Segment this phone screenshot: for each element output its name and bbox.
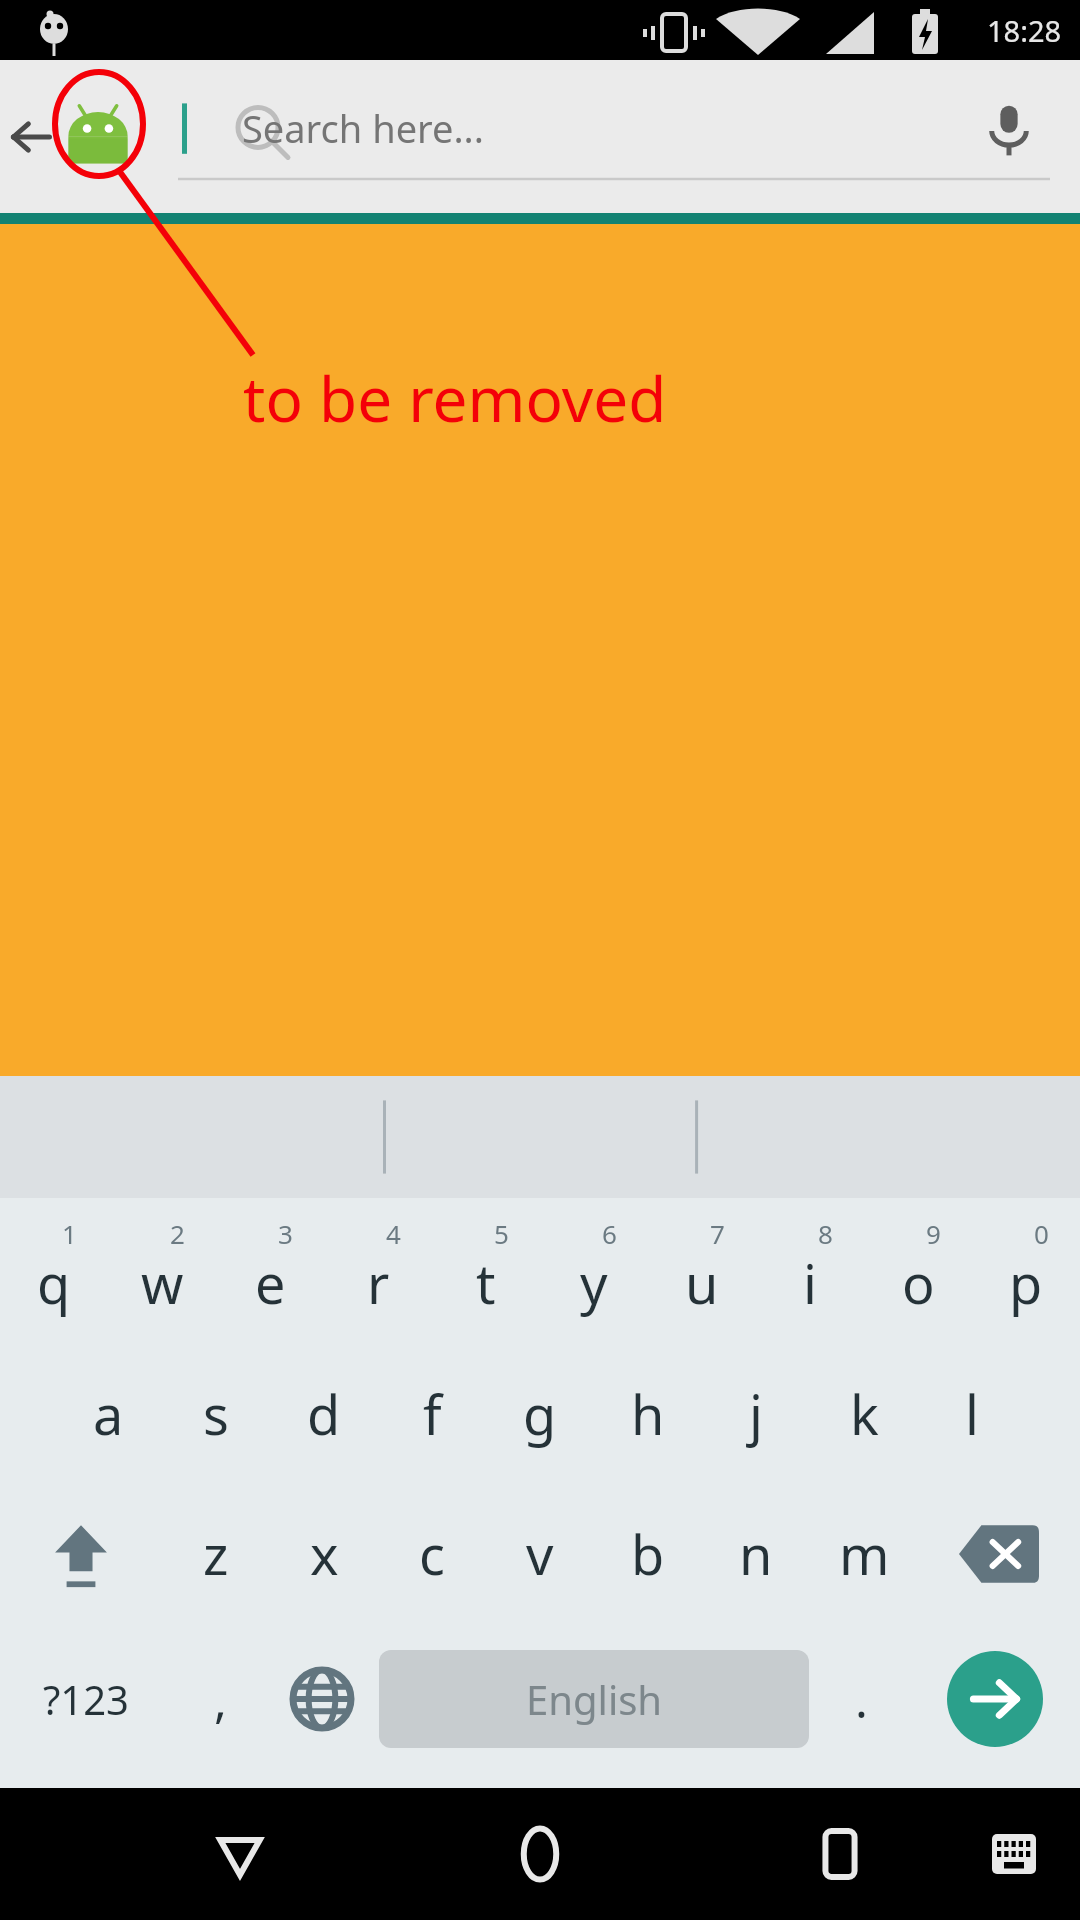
staticText: ?123 xyxy=(43,1672,129,1726)
button[interactable]: n xyxy=(702,1484,810,1624)
staticText: 18:28 xyxy=(987,11,1062,50)
staticText: 0 xyxy=(1034,1216,1049,1251)
button[interactable]: Shift xyxy=(0,1484,162,1624)
staticText: f xyxy=(423,1377,442,1451)
staticText: 5 xyxy=(494,1216,509,1251)
button[interactable]: Back xyxy=(2,108,60,166)
button[interactable]: 0 xyxy=(972,1204,1080,1344)
staticText: y xyxy=(580,1246,608,1320)
staticText: t xyxy=(476,1246,496,1320)
button[interactable]: 9 xyxy=(864,1204,972,1344)
staticText: r xyxy=(367,1246,390,1320)
button[interactable]: g xyxy=(486,1344,594,1484)
staticText: i xyxy=(803,1246,817,1320)
button[interactable]: j xyxy=(702,1344,810,1484)
staticText: 6 xyxy=(602,1216,617,1251)
button[interactable]: f xyxy=(378,1344,486,1484)
button[interactable]: x xyxy=(270,1484,378,1624)
staticText: p xyxy=(1009,1246,1043,1320)
button[interactable]: , xyxy=(172,1624,268,1774)
staticText: 3 xyxy=(278,1216,293,1251)
staticText: w xyxy=(141,1246,184,1320)
button[interactable] xyxy=(385,1076,697,1198)
staticText: x xyxy=(310,1517,339,1591)
staticText: d xyxy=(307,1377,341,1451)
button[interactable]: Recent apps xyxy=(780,1794,900,1914)
staticText: English xyxy=(526,1672,663,1726)
button[interactable]: m xyxy=(810,1484,918,1624)
button[interactable]: App icon xyxy=(58,97,138,177)
button[interactable]: a xyxy=(54,1344,162,1484)
button[interactable]: 4 xyxy=(324,1204,432,1344)
staticText: h xyxy=(631,1377,665,1451)
button[interactable]: h xyxy=(594,1344,702,1484)
staticText: e xyxy=(255,1246,286,1320)
staticText: m xyxy=(839,1517,890,1591)
staticText: to be removed xyxy=(243,356,667,440)
staticText: c xyxy=(419,1517,445,1591)
staticText: 7 xyxy=(710,1216,725,1251)
button[interactable]: Change language xyxy=(268,1624,375,1774)
button[interactable]: 7 xyxy=(648,1204,756,1344)
staticText: s xyxy=(203,1377,229,1451)
staticText: 8 xyxy=(818,1216,833,1251)
staticText: 2 xyxy=(170,1216,185,1251)
button[interactable]: ?123 xyxy=(0,1624,172,1774)
staticText: g xyxy=(523,1377,557,1451)
button[interactable]: Voice search xyxy=(974,95,1044,165)
staticText: . xyxy=(855,1667,868,1732)
staticText: a xyxy=(93,1377,124,1451)
button[interactable]: s xyxy=(162,1344,270,1484)
button[interactable]: 5 xyxy=(432,1204,540,1344)
button[interactable]: z xyxy=(162,1484,270,1624)
button[interactable]: 3 xyxy=(216,1204,324,1344)
staticText: , xyxy=(214,1667,227,1732)
button[interactable]: English xyxy=(379,1650,809,1748)
button[interactable]: 1 xyxy=(0,1204,108,1344)
staticText: o xyxy=(902,1246,935,1320)
staticText: b xyxy=(631,1517,665,1591)
button[interactable]: d xyxy=(270,1344,378,1484)
button[interactable]: Back xyxy=(180,1794,300,1914)
button[interactable]: 8 xyxy=(756,1204,864,1344)
button[interactable]: b xyxy=(594,1484,702,1624)
button[interactable]: Search here... xyxy=(150,77,1060,197)
button[interactable]: v xyxy=(486,1484,594,1624)
staticText: u xyxy=(685,1246,719,1320)
button[interactable]: 2 xyxy=(108,1204,216,1344)
button[interactable]: l xyxy=(918,1344,1026,1484)
staticText: z xyxy=(203,1517,229,1591)
button[interactable]: k xyxy=(810,1344,918,1484)
staticText: l xyxy=(965,1377,979,1451)
button[interactable]: Backspace xyxy=(918,1484,1080,1624)
button[interactable]: Home xyxy=(480,1794,600,1914)
button[interactable]: c xyxy=(378,1484,486,1624)
staticText: n xyxy=(739,1517,773,1591)
staticText: 4 xyxy=(386,1216,401,1251)
button[interactable]: . xyxy=(813,1624,909,1774)
staticText: j xyxy=(749,1377,763,1451)
button[interactable]: 6 xyxy=(540,1204,648,1344)
staticText: q xyxy=(37,1246,71,1320)
staticText: k xyxy=(850,1377,879,1451)
button[interactable]: Enter xyxy=(909,1624,1080,1774)
button[interactable]: Switch keyboard xyxy=(966,1806,1062,1902)
staticText: 1 xyxy=(62,1216,77,1251)
staticText: 9 xyxy=(926,1216,941,1251)
staticText: v xyxy=(526,1517,554,1591)
staticText: Search here... xyxy=(242,102,484,154)
